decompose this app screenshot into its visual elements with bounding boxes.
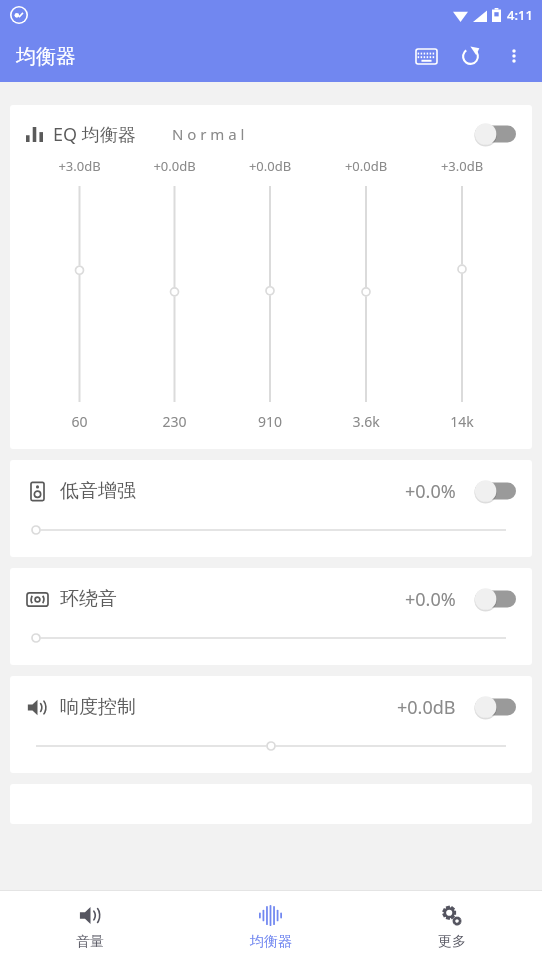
button[interactable]: Toggle <box>472 478 518 504</box>
button[interactable] <box>36 521 506 539</box>
button[interactable]: More options <box>492 34 536 78</box>
staticText: +0.0% <box>405 587 456 612</box>
button[interactable] <box>36 629 506 647</box>
button[interactable]: 更多 <box>361 891 542 964</box>
button[interactable] <box>318 186 414 402</box>
staticText: 3.6k <box>318 412 414 431</box>
staticText: 230 <box>127 412 222 431</box>
staticText: 均衡器 <box>16 44 76 69</box>
staticText: +0.0dB <box>127 157 222 175</box>
button[interactable]: EQ 均衡器 <box>10 105 532 449</box>
staticText: +0.0dB <box>222 157 318 175</box>
staticText: 4:11 <box>507 6 533 24</box>
button[interactable]: 响度控制 <box>10 676 532 773</box>
staticText: 环绕音 <box>60 587 117 611</box>
staticText: 更多 <box>438 933 466 951</box>
staticText: 音量 <box>76 933 104 951</box>
staticText: 910 <box>222 412 318 431</box>
staticText: +3.0dB <box>32 157 127 175</box>
staticText: 60 <box>32 412 127 431</box>
button[interactable] <box>222 186 318 402</box>
button[interactable]: 环绕音 <box>10 568 532 665</box>
staticText: +0.0dB <box>397 695 456 720</box>
button[interactable]: 均衡器 <box>180 891 361 964</box>
button[interactable] <box>36 737 506 755</box>
button[interactable]: Toggle <box>472 586 518 612</box>
button[interactable]: 低音增强 <box>10 460 532 557</box>
staticText: +3.0dB <box>414 157 510 175</box>
button[interactable] <box>127 186 222 402</box>
button[interactable]: Keyboard <box>404 34 448 78</box>
button[interactable] <box>32 186 127 402</box>
button[interactable]: Toggle <box>472 121 518 147</box>
staticText: +0.0dB <box>318 157 414 175</box>
staticText: +0.0% <box>405 479 456 504</box>
button[interactable]: 音量 <box>0 891 180 964</box>
staticText: 响度控制 <box>60 695 136 719</box>
button[interactable]: Refresh <box>448 34 492 78</box>
button[interactable]: Toggle <box>472 694 518 720</box>
staticText: 均衡器 <box>250 933 292 951</box>
staticText: 14k <box>414 412 510 431</box>
staticText: 低音增强 <box>60 479 136 503</box>
button[interactable] <box>414 186 510 402</box>
staticText: EQ 均衡器 <box>53 122 136 147</box>
staticText: N o r m a l <box>172 124 245 144</box>
